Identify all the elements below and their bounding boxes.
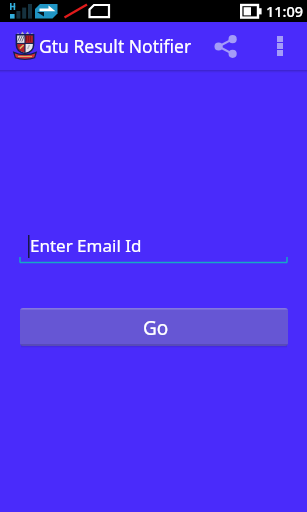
- button[interactable]: More options: [261, 22, 299, 70]
- button[interactable]: Go: [20, 308, 288, 346]
- staticText: Enter Email Id: [30, 234, 142, 257]
- button[interactable]: Share: [203, 22, 247, 70]
- staticText: 11:09: [266, 1, 304, 21]
- staticText: Gtu Result Notifier: [39, 34, 192, 58]
- button[interactable]: Enter Email Id: [19, 228, 288, 262]
- staticText: Go: [143, 315, 169, 341]
